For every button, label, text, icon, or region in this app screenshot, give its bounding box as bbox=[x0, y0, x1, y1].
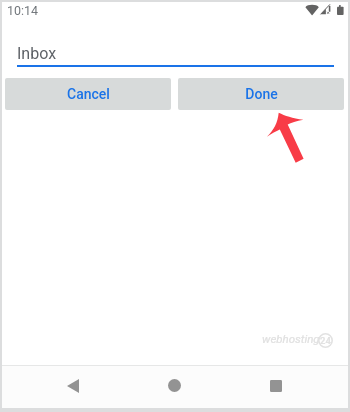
staticText: 10:14 bbox=[7, 3, 39, 18]
staticText: Inbox bbox=[17, 44, 57, 63]
button[interactable]: Home bbox=[123, 366, 225, 405]
staticText: 24 bbox=[320, 335, 331, 346]
staticText: Done bbox=[245, 86, 278, 102]
button[interactable]: Recents bbox=[225, 366, 327, 405]
staticText: Cancel bbox=[67, 86, 110, 102]
staticText: webhosting bbox=[262, 332, 320, 345]
button[interactable]: Back bbox=[22, 366, 123, 405]
button[interactable]: Inbox bbox=[17, 38, 334, 67]
button[interactable]: Done bbox=[178, 78, 344, 110]
button[interactable]: Cancel bbox=[5, 78, 171, 110]
